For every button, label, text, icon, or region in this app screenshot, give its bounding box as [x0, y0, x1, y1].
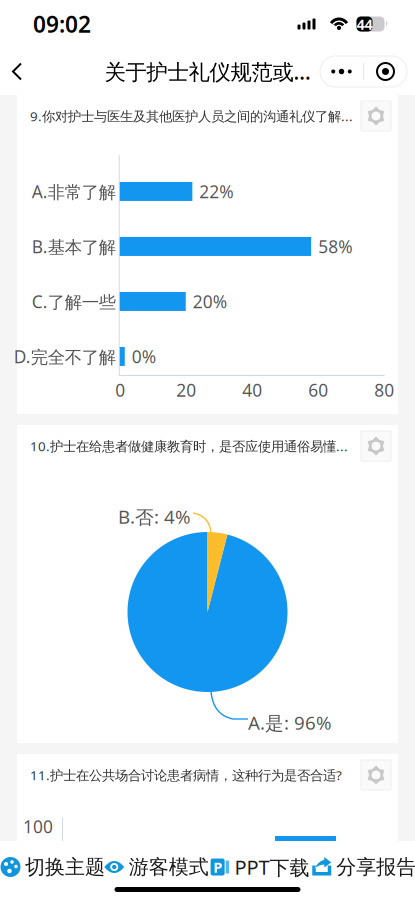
- staticText: 游客模式: [129, 855, 209, 879]
- staticText: C.了解一些: [32, 290, 116, 313]
- button[interactable]: Close: [364, 56, 407, 86]
- staticText: 80: [374, 378, 394, 401]
- button[interactable]: Settings: [361, 760, 391, 790]
- button[interactable]: P: [207, 841, 311, 893]
- staticText: 分享报告: [336, 855, 415, 879]
- staticText: 20: [176, 378, 196, 401]
- staticText: 44: [356, 14, 372, 34]
- staticText: 11.护士在公共场合讨论患者病情，这种行为是否合适?: [30, 766, 342, 784]
- staticText: 切换主题: [25, 855, 105, 879]
- staticText: D.完全不了解: [14, 345, 116, 368]
- staticText: 10.护士在给患者做健康教育时，是否应使用通俗易懂的语言?: [30, 437, 359, 455]
- button[interactable]: Back: [0, 52, 42, 90]
- button[interactable]: More: [320, 56, 363, 86]
- staticText: 关于护士礼仪规范或…: [104, 57, 310, 86]
- staticText: 58%: [318, 235, 352, 258]
- staticText: 40: [242, 378, 262, 401]
- staticText: 100: [23, 815, 53, 838]
- staticText: PPT下载: [234, 854, 309, 880]
- staticText: 0: [115, 378, 125, 401]
- button[interactable]: 游客模式: [104, 841, 208, 893]
- button[interactable]: 分享报告: [311, 841, 415, 893]
- button[interactable]: Settings: [361, 101, 391, 131]
- staticText: A.非常了解: [32, 180, 116, 203]
- staticText: 09:02: [33, 9, 91, 39]
- button[interactable]: Settings: [361, 431, 391, 461]
- staticText: 9.你对护士与医生及其他医护人员之间的沟通礼仪了解程度如何..: [30, 107, 359, 125]
- staticText: 0%: [132, 345, 156, 368]
- staticText: P: [213, 857, 222, 877]
- staticText: A.是: 96%: [248, 710, 332, 735]
- button[interactable]: 切换主题: [0, 841, 104, 893]
- staticText: 22%: [199, 180, 233, 203]
- staticText: 20%: [193, 290, 227, 313]
- staticText: 60: [308, 378, 328, 401]
- staticText: B.基本了解: [32, 235, 116, 258]
- staticText: B.否: 4%: [118, 504, 191, 529]
